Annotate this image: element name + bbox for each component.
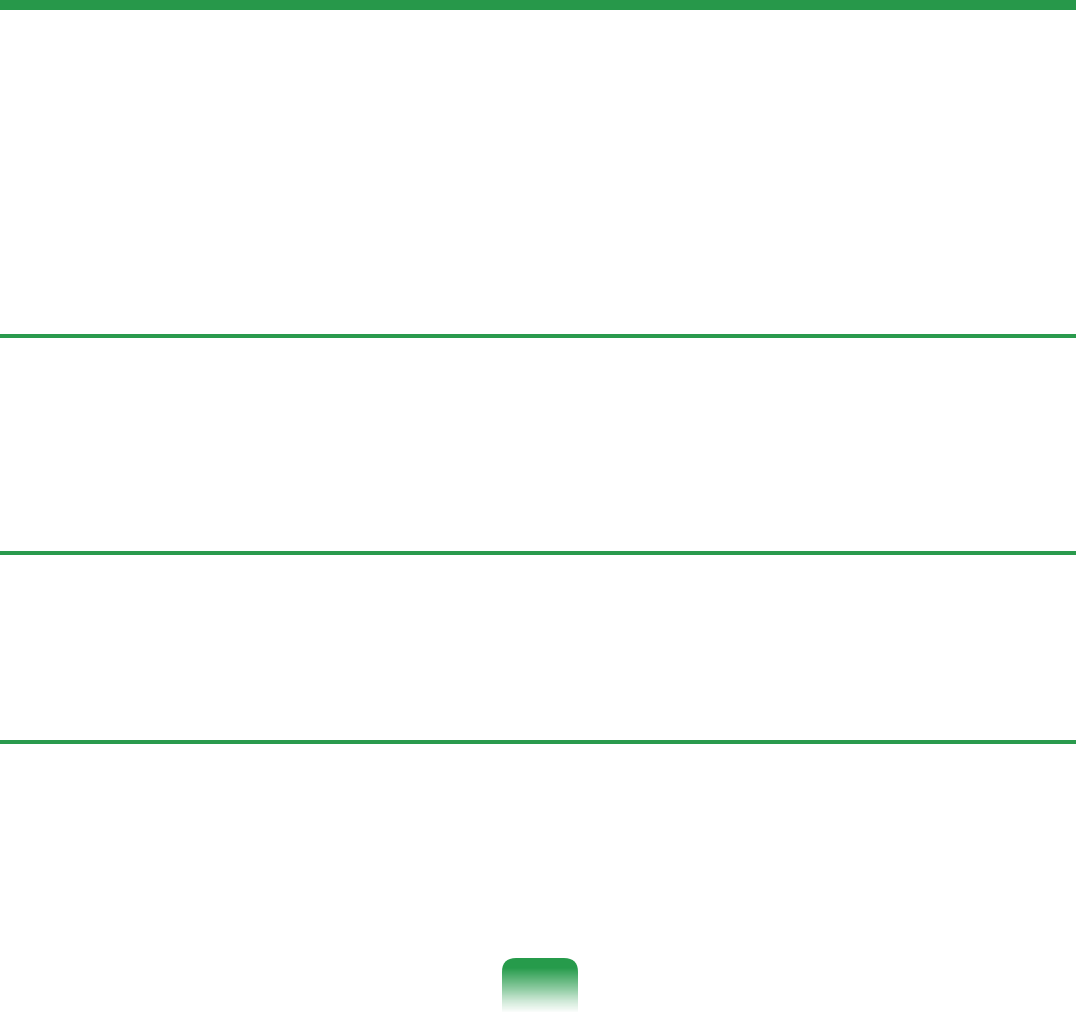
button[interactable]: Selected tab indicator [502, 958, 578, 1012]
